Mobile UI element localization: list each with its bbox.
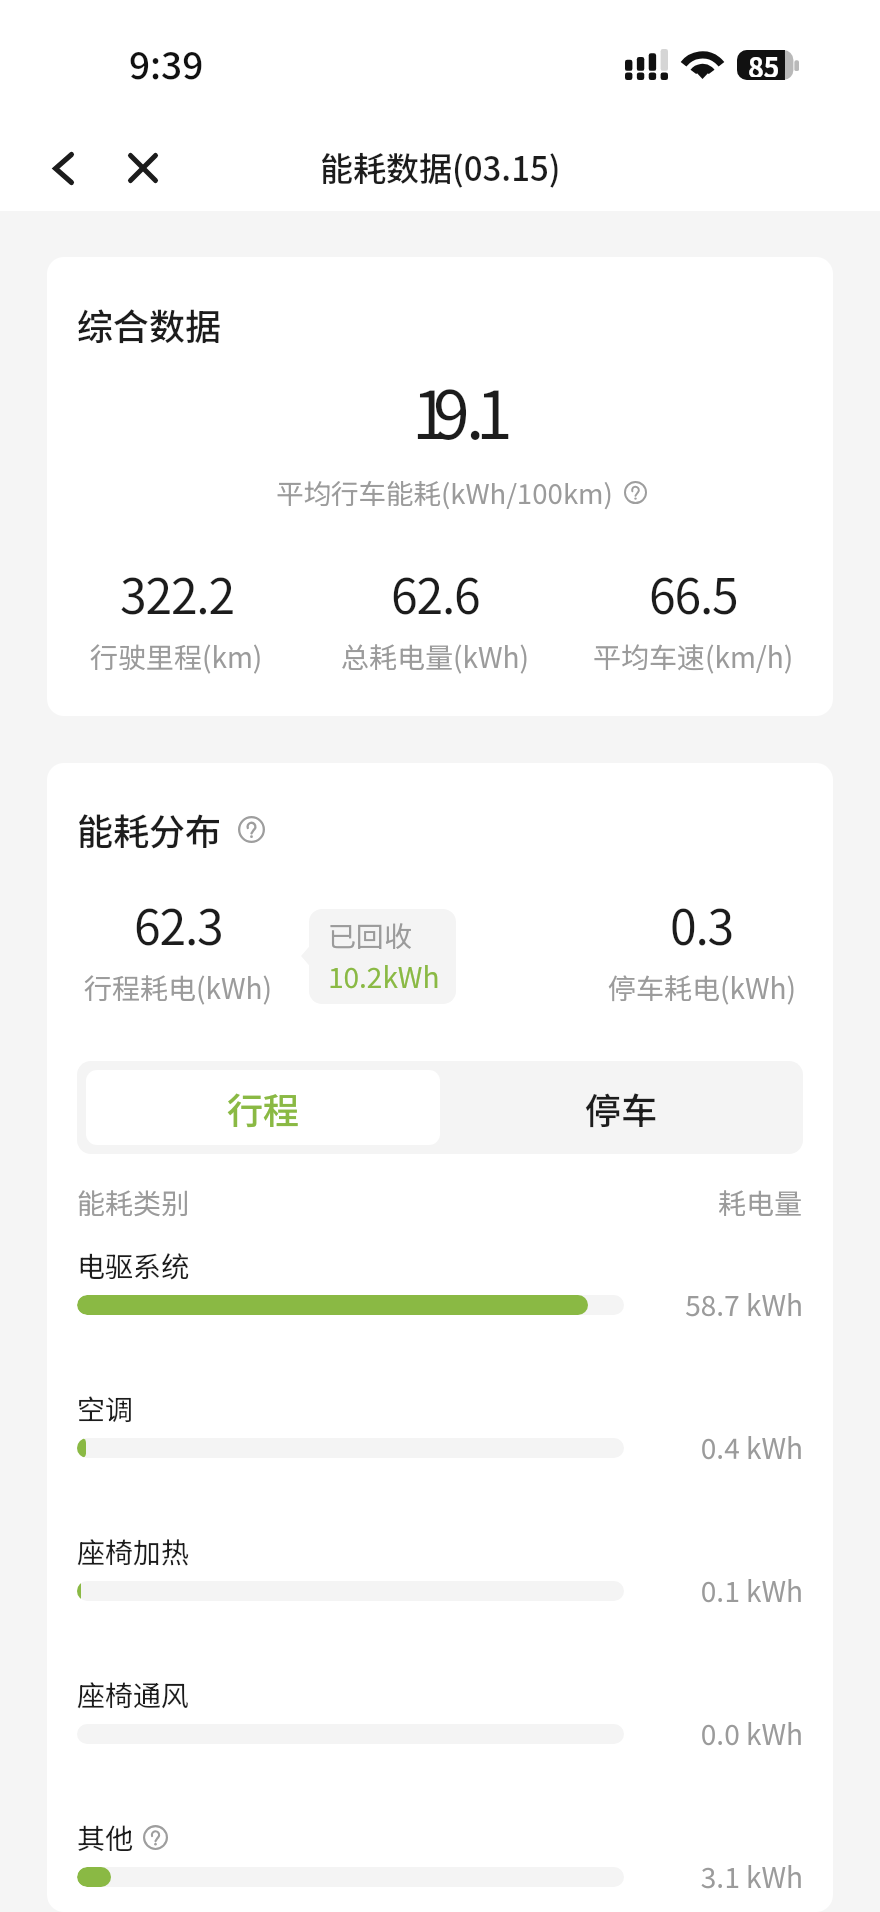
staticText: 85 bbox=[748, 47, 779, 77]
staticText: . bbox=[466, 362, 476, 458]
staticText: 1 bbox=[412, 362, 433, 458]
staticText: 能耗数据(03.15) bbox=[320, 143, 561, 191]
button[interactable]: 停车 bbox=[440, 1061, 803, 1154]
staticText: 其他 bbox=[77, 1817, 134, 1858]
staticText: 空调 bbox=[77, 1388, 134, 1429]
staticText: 行程 bbox=[227, 1082, 300, 1134]
staticText: 能耗分布 bbox=[77, 803, 222, 855]
staticText: 58.7 kWh bbox=[685, 1284, 803, 1325]
staticText: 电驱系统 bbox=[77, 1245, 190, 1286]
staticText: 行驶里程(km) bbox=[90, 636, 263, 677]
staticText: 3.1 kWh bbox=[700, 1856, 803, 1897]
staticText: 座椅加热 bbox=[77, 1531, 190, 1572]
button[interactable]: Close bbox=[117, 142, 169, 194]
staticText: 62.3 bbox=[134, 889, 223, 959]
staticText: 座椅通风 bbox=[77, 1674, 190, 1715]
staticText: 62.6 bbox=[391, 558, 480, 628]
staticText: 66.5 bbox=[649, 558, 738, 628]
staticText: 9:39 bbox=[129, 36, 204, 90]
staticText: 0.1 kWh bbox=[700, 1570, 803, 1611]
staticText: 10.2kWh bbox=[328, 956, 440, 997]
staticText: 综合数据 bbox=[77, 298, 222, 350]
staticText: 停车 bbox=[585, 1082, 658, 1134]
button[interactable]: Back bbox=[37, 142, 89, 194]
staticText: 平均行车能耗(kWh/100km) bbox=[276, 472, 613, 512]
staticText: 能耗类别 bbox=[77, 1182, 190, 1223]
staticText: 322.2 bbox=[120, 558, 234, 628]
staticText: 1 bbox=[476, 362, 497, 458]
staticText: 耗电量 bbox=[718, 1182, 803, 1223]
staticText: 已回收 bbox=[328, 915, 413, 956]
staticText: 0.4 kWh bbox=[700, 1427, 803, 1468]
staticText: 0.0 kWh bbox=[700, 1713, 803, 1754]
staticText: 平均车速(km/h) bbox=[593, 636, 794, 677]
staticText: 9 bbox=[433, 362, 466, 458]
staticText: 总耗电量(kWh) bbox=[341, 636, 529, 677]
staticText: 停车耗电(kWh) bbox=[608, 967, 796, 1008]
staticText: 0.3 bbox=[670, 889, 734, 959]
button[interactable]: 行程 bbox=[86, 1070, 440, 1145]
staticText: 行程耗电(kWh) bbox=[84, 967, 272, 1008]
